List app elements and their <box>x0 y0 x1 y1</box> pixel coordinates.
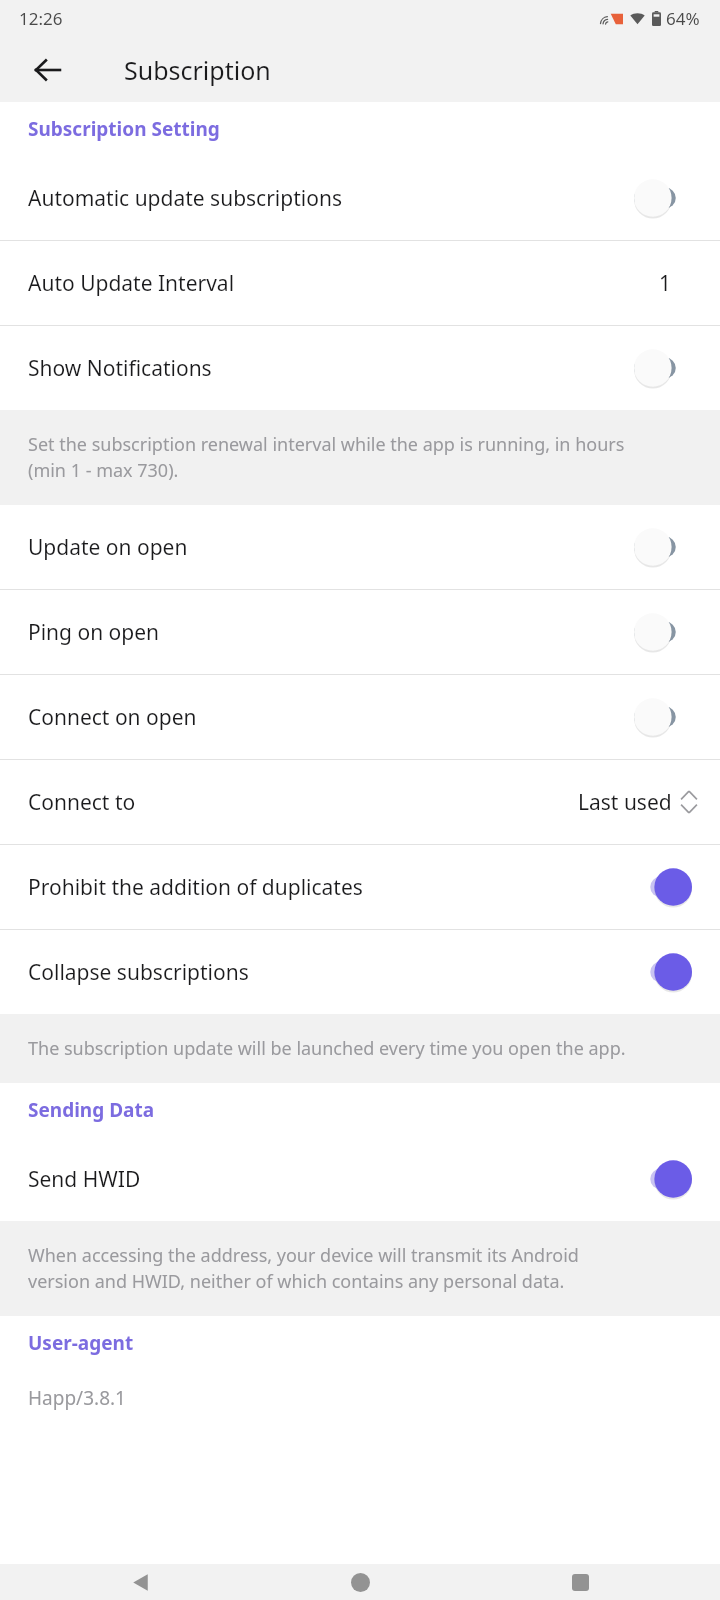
staticText: 1 <box>659 269 672 298</box>
staticText: Last used <box>578 788 672 817</box>
staticText: User-agent <box>28 1330 134 1356</box>
staticText: Send HWID <box>28 1165 141 1194</box>
staticText: Automatic update subscriptions <box>28 184 342 213</box>
staticText: Update on open <box>28 533 188 562</box>
button[interactable]: Connect on open <box>0 675 720 759</box>
button[interactable]: Send HWID <box>0 1137 720 1221</box>
staticText: The subscription update will be launched… <box>28 1036 626 1061</box>
staticText: Subscription Setting <box>28 116 220 142</box>
button[interactable]: Back <box>24 46 72 94</box>
button[interactable]: Automatic update subscriptions <box>0 156 720 240</box>
button[interactable]: Back <box>110 1564 170 1600</box>
staticText: Ping on open <box>28 618 160 647</box>
button[interactable]: Recents <box>550 1564 610 1600</box>
staticText: Subscription <box>124 53 271 87</box>
staticText: Sending Data <box>28 1097 155 1123</box>
staticText: Connect to <box>28 788 136 817</box>
staticText: Auto Update Interval <box>28 269 235 298</box>
button[interactable]: Connect to <box>0 760 720 844</box>
staticText: Prohibit the addition of duplicates <box>28 873 363 902</box>
staticText: Happ/3.8.1 <box>28 1385 126 1411</box>
button[interactable]: Prohibit the addition of duplicates <box>0 845 720 929</box>
staticText: When accessing the address, your device … <box>28 1243 579 1294</box>
staticText: Show Notifications <box>28 354 212 383</box>
button[interactable]: Home <box>330 1564 390 1600</box>
button[interactable]: Ping on open <box>0 590 720 674</box>
button[interactable]: Update on open <box>0 505 720 589</box>
button[interactable]: Collapse subscriptions <box>0 930 720 1014</box>
button[interactable]: Show Notifications <box>0 326 720 410</box>
staticText: 64% <box>666 7 700 30</box>
staticText: 12:26 <box>19 7 63 30</box>
staticText: Collapse subscriptions <box>28 958 249 987</box>
staticText: Connect on open <box>28 703 197 732</box>
staticText: Set the subscription renewal interval wh… <box>28 432 625 483</box>
button[interactable]: Auto Update Interval <box>0 241 720 325</box>
